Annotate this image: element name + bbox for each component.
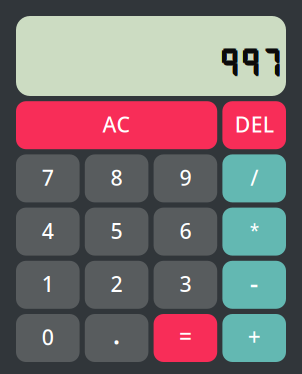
staticText: - [250,265,259,300]
button[interactable]: Divide [222,154,286,202]
button[interactable]: 4 [16,208,80,256]
staticText: 4 [42,216,54,245]
staticText: 997 [218,46,281,80]
button[interactable]: Equals [154,314,217,362]
staticText: DEL [235,110,274,138]
staticText: 0 [42,323,54,351]
button[interactable]: AC [16,101,217,149]
staticText: 1 [42,270,54,298]
staticText: 3 [179,270,191,298]
staticText: + [248,322,261,352]
staticText: 6 [179,216,191,245]
staticText: 2 [111,270,123,298]
staticText: 997 [219,46,282,80]
staticText: 7 [42,163,54,191]
staticText: 8 [111,163,123,191]
staticText: = [179,321,192,351]
staticText: 997 [218,46,281,81]
button[interactable]: 9 [154,154,217,202]
staticText: 997 [218,45,281,79]
staticText: AC [103,110,131,138]
button[interactable]: 1 [16,261,80,309]
button[interactable]: 0 [16,314,80,362]
staticText: * [250,219,259,242]
staticText: 5 [111,216,123,245]
staticText: / [250,163,258,191]
button[interactable]: Subtract [222,261,286,309]
button[interactable]: 6 [154,208,217,256]
button[interactable]: 8 [85,154,148,202]
staticText: 997 [219,46,282,81]
button[interactable]: Decimal point [85,314,148,362]
button[interactable]: Add [222,314,286,362]
button[interactable]: Multiply [222,208,286,256]
button[interactable]: 5 [85,208,148,256]
staticText: 997 [219,45,282,79]
button[interactable]: 7 [16,154,80,202]
button[interactable]: 2 [85,261,148,309]
button[interactable]: 3 [154,261,217,309]
staticText: 997 [220,45,283,79]
staticText: 997 [220,46,283,80]
staticText: 9 [179,163,191,191]
staticText: . [113,313,121,352]
staticText: 997 [220,46,283,81]
button[interactable]: DEL [222,101,286,149]
